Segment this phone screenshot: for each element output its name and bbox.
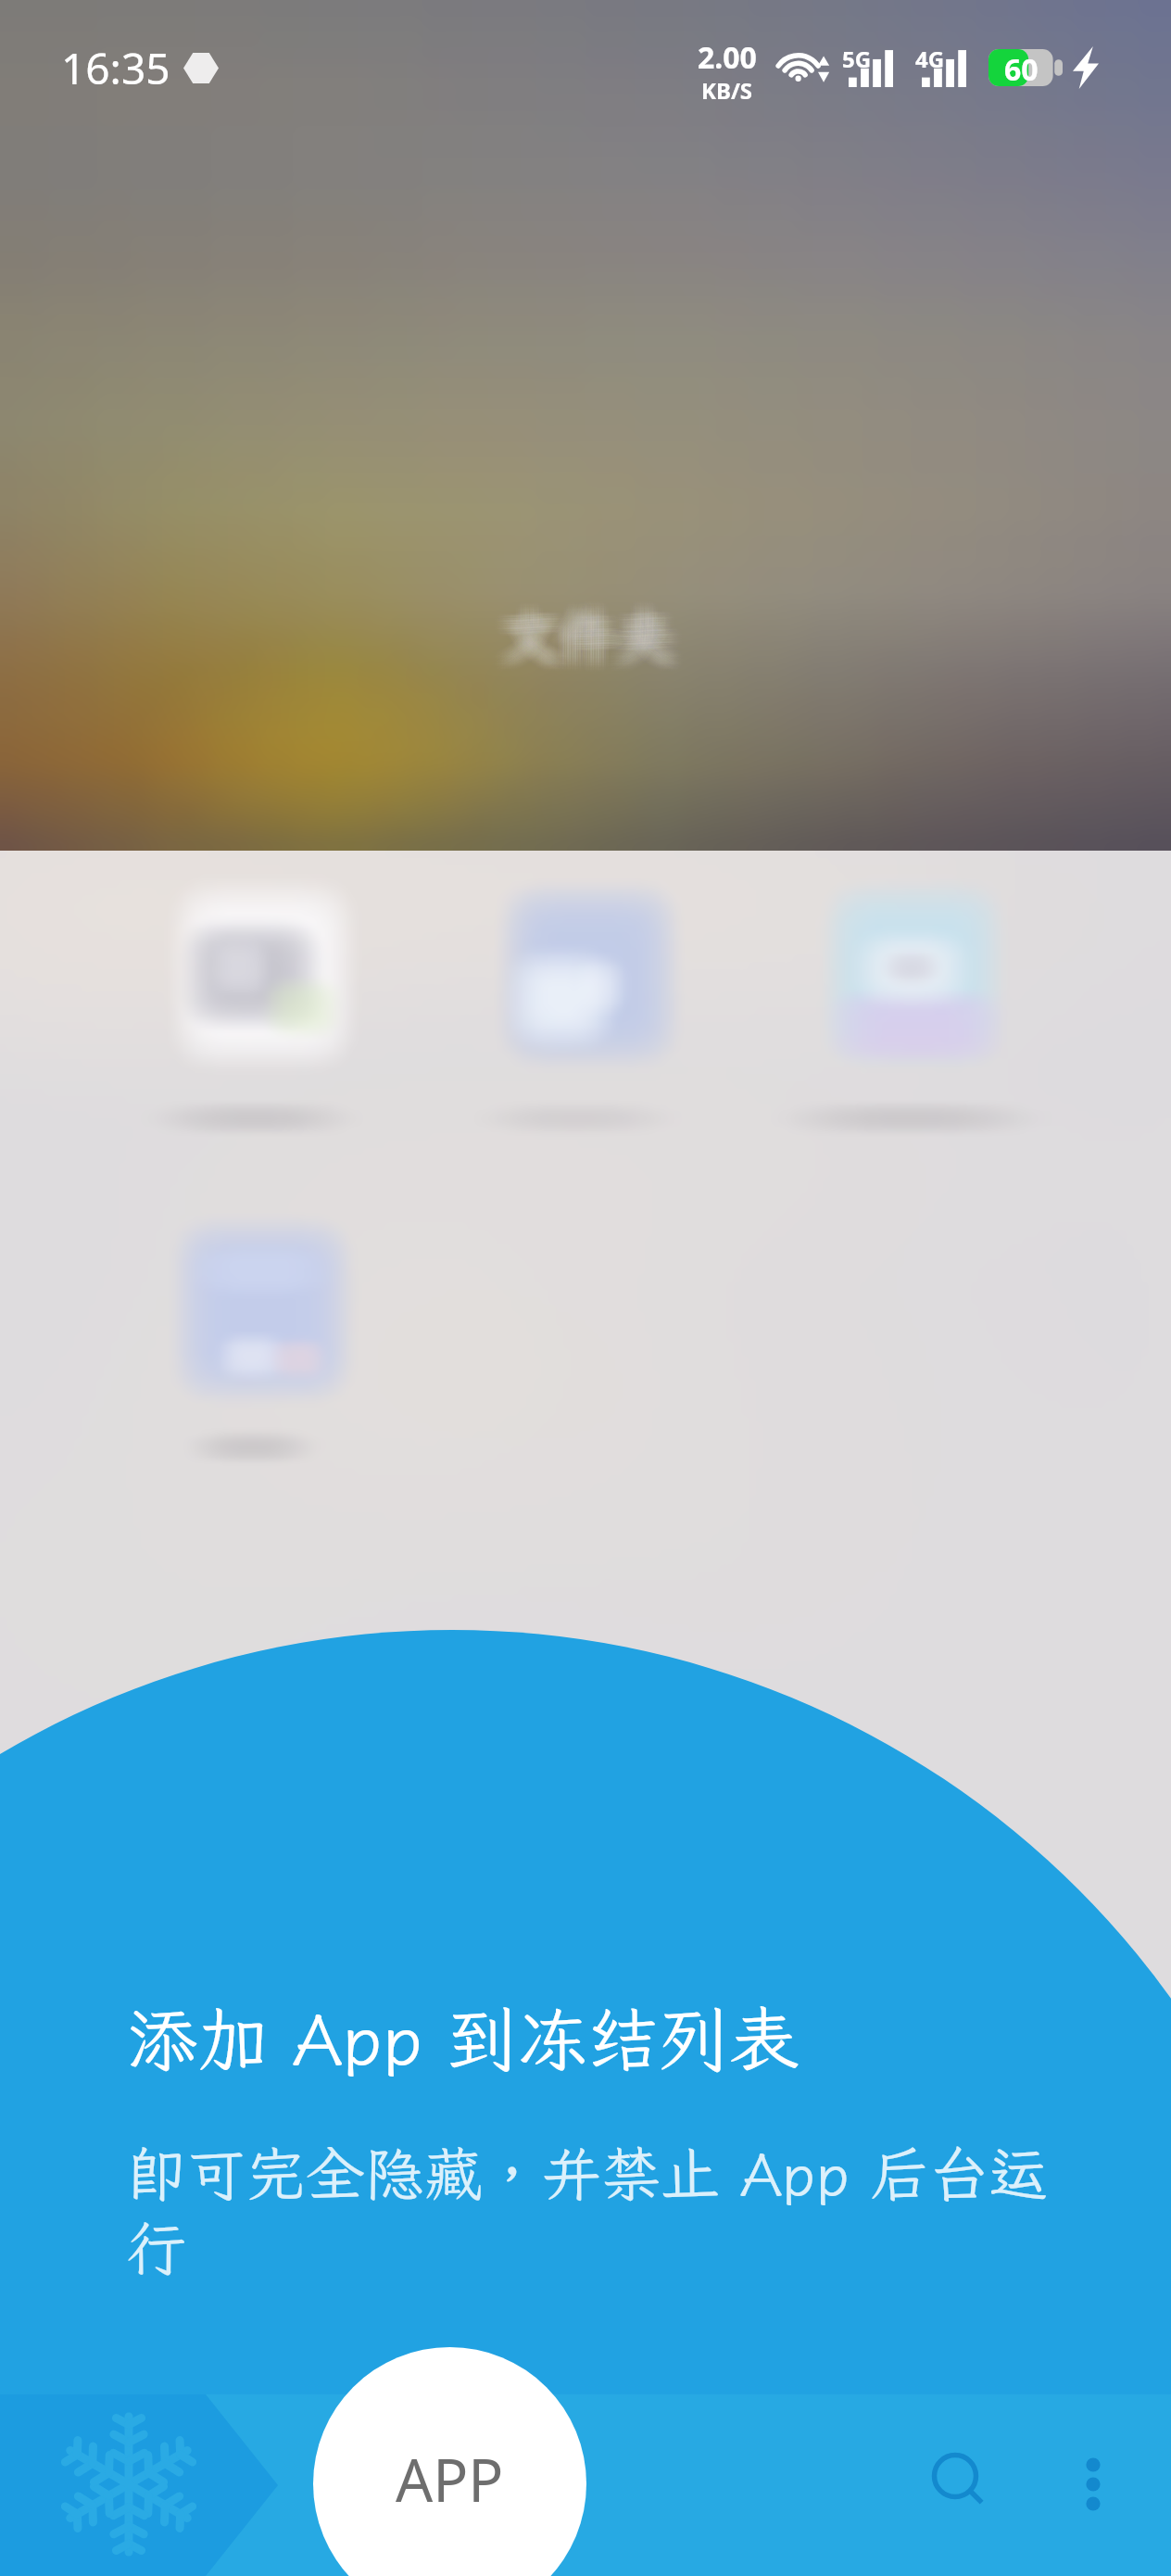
staticText: 文件夹 — [501, 590, 674, 666]
staticText: 文件夹 — [504, 602, 677, 678]
staticText: 文件夹 — [494, 593, 667, 669]
staticText: 文件夹 — [504, 590, 677, 666]
button[interactable]: Freeze — [61, 2417, 196, 2552]
staticText: 文件夹 — [494, 598, 667, 674]
staticText: 文件夹 — [498, 593, 672, 669]
staticText: 文件夹 — [510, 598, 684, 674]
staticText: 文件夹 — [510, 593, 684, 669]
staticText: 文件夹 — [513, 588, 686, 664]
staticText: 文件夹 — [494, 602, 667, 678]
staticText: 文件夹 — [501, 600, 674, 676]
staticText: 文件夹 — [510, 600, 684, 676]
staticText: 文件夹 — [494, 600, 667, 676]
staticText: 文件夹 — [492, 602, 665, 678]
staticText: 文件夹 — [497, 605, 670, 681]
staticText: 文件夹 — [492, 590, 665, 666]
staticText: 文件夹 — [509, 607, 682, 683]
staticText: 文件夹 — [510, 605, 684, 681]
staticText: 文件夹 — [489, 600, 662, 676]
staticText: 文件夹 — [509, 590, 682, 666]
staticText: 文件夹 — [510, 607, 684, 683]
staticText: 文件夹 — [501, 598, 674, 674]
staticText: 文件夹 — [489, 590, 662, 666]
staticText: 文件夹 — [509, 600, 682, 676]
staticText: 2.00 — [698, 37, 757, 78]
staticText: 文件夹 — [509, 598, 682, 674]
staticText: 文件夹 — [501, 593, 674, 669]
staticText: 文件夹 — [509, 605, 682, 681]
staticText: 即可完全隐藏，并禁止 App 后台运行 — [127, 2134, 1063, 2286]
staticText: 文件夹 — [506, 607, 679, 683]
staticText: 文件夹 — [492, 607, 665, 683]
button[interactable]: APP — [313, 2347, 586, 2576]
staticText: 文件夹 — [513, 598, 686, 674]
staticText: 文件夹 — [492, 605, 665, 681]
staticText: 文件夹 — [504, 605, 677, 681]
staticText: 文件夹 — [513, 593, 686, 669]
staticText: 文件夹 — [513, 602, 686, 678]
staticText: 文件夹 — [506, 588, 679, 664]
staticText: 文件夹 — [501, 607, 674, 683]
staticText: 文件夹 — [494, 590, 667, 666]
button[interactable]: Search — [881, 2402, 1029, 2550]
staticText: 60 — [1004, 49, 1039, 86]
button[interactable]: More options — [1019, 2410, 1167, 2558]
staticText: 文件夹 — [497, 593, 670, 669]
staticText: 文件夹 — [497, 598, 670, 674]
staticText: 文件夹 — [509, 593, 682, 669]
staticText: 文件夹 — [506, 598, 679, 674]
staticText: 4G — [915, 44, 945, 74]
staticText: 文件夹 — [501, 595, 674, 671]
staticText: 文件夹 — [509, 588, 682, 664]
staticText: 文件夹 — [498, 588, 672, 664]
staticText: 文件夹 — [513, 600, 686, 676]
staticText: 文件夹 — [498, 598, 672, 674]
staticText: 文件夹 — [489, 588, 662, 664]
staticText: 文件夹 — [506, 590, 679, 666]
staticText: 文件夹 — [504, 595, 677, 671]
staticText: 文件夹 — [504, 593, 677, 669]
staticText: 文件夹 — [510, 595, 684, 671]
staticText: 文件夹 — [494, 607, 667, 683]
staticText: 文件夹 — [492, 588, 665, 664]
staticText: APP — [396, 2440, 504, 2519]
staticText: 文件夹 — [489, 602, 662, 678]
staticText: 文件夹 — [489, 607, 662, 683]
staticText: 文件夹 — [513, 595, 686, 671]
staticText: 文件夹 — [489, 598, 662, 674]
staticText: 文件夹 — [497, 600, 670, 676]
staticText: 文件夹 — [501, 602, 674, 678]
staticText: 文件夹 — [504, 598, 677, 674]
staticText: 文件夹 — [504, 607, 677, 683]
staticText: 5G — [842, 44, 872, 74]
staticText: 文件夹 — [494, 595, 667, 671]
staticText: 文件夹 — [489, 605, 662, 681]
staticText: 文件夹 — [504, 600, 677, 676]
staticText: 文件夹 — [506, 605, 679, 681]
staticText: 文件夹 — [498, 590, 672, 666]
staticText: 文件夹 — [497, 590, 670, 666]
staticText: 文件夹 — [497, 602, 670, 678]
staticText: 文件夹 — [506, 593, 679, 669]
staticText: 文件夹 — [501, 605, 674, 681]
staticText: 文件夹 — [506, 600, 679, 676]
staticText: 添加 App 到冻结列表 — [128, 1992, 800, 2085]
staticText: 文件夹 — [497, 607, 670, 683]
staticText: 文件夹 — [513, 607, 686, 683]
staticText: 文件夹 — [498, 605, 672, 681]
staticText: KB/S — [701, 75, 753, 106]
staticText: 文件夹 — [498, 607, 672, 683]
staticText: 文件夹 — [494, 588, 667, 664]
staticText: 文件夹 — [492, 595, 665, 671]
staticText: 文件夹 — [489, 593, 662, 669]
staticText: 文件夹 — [494, 605, 667, 681]
staticText: 文件夹 — [510, 590, 684, 666]
staticText: 文件夹 — [510, 588, 684, 664]
staticText: 文件夹 — [501, 588, 674, 664]
staticText: 文件夹 — [513, 590, 686, 666]
staticText: 文件夹 — [498, 595, 672, 671]
staticText: 文件夹 — [492, 598, 665, 674]
staticText: 文件夹 — [489, 595, 662, 671]
staticText: 文件夹 — [497, 588, 670, 664]
staticText: 文件夹 — [510, 602, 684, 678]
